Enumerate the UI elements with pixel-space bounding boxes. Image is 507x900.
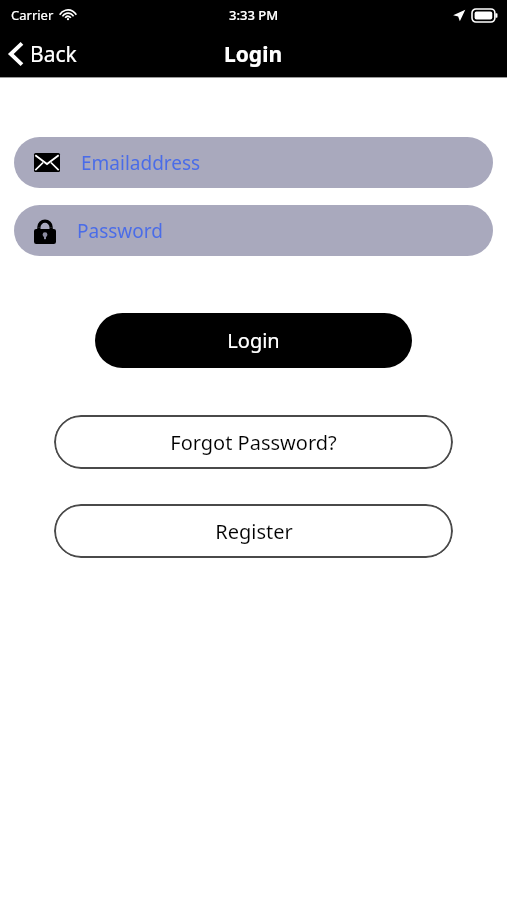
staticText: Emailaddress <box>81 150 201 176</box>
button[interactable]: Register <box>54 504 453 558</box>
staticText: Forgot Password? <box>170 429 337 456</box>
staticText: Login <box>227 327 280 354</box>
button[interactable]: Password <box>14 205 493 256</box>
staticText: 3:33 PM <box>229 6 279 24</box>
button[interactable]: Login <box>95 313 412 368</box>
staticText: Carrier <box>11 6 54 24</box>
button[interactable]: Emailaddress <box>14 137 493 188</box>
staticText: Login <box>224 40 283 69</box>
staticText: Password <box>77 218 163 244</box>
staticText: Back <box>30 40 77 69</box>
button[interactable]: Forgot Password? <box>54 415 453 469</box>
staticText: Register <box>215 518 293 545</box>
button[interactable]: Back <box>0 30 89 78</box>
